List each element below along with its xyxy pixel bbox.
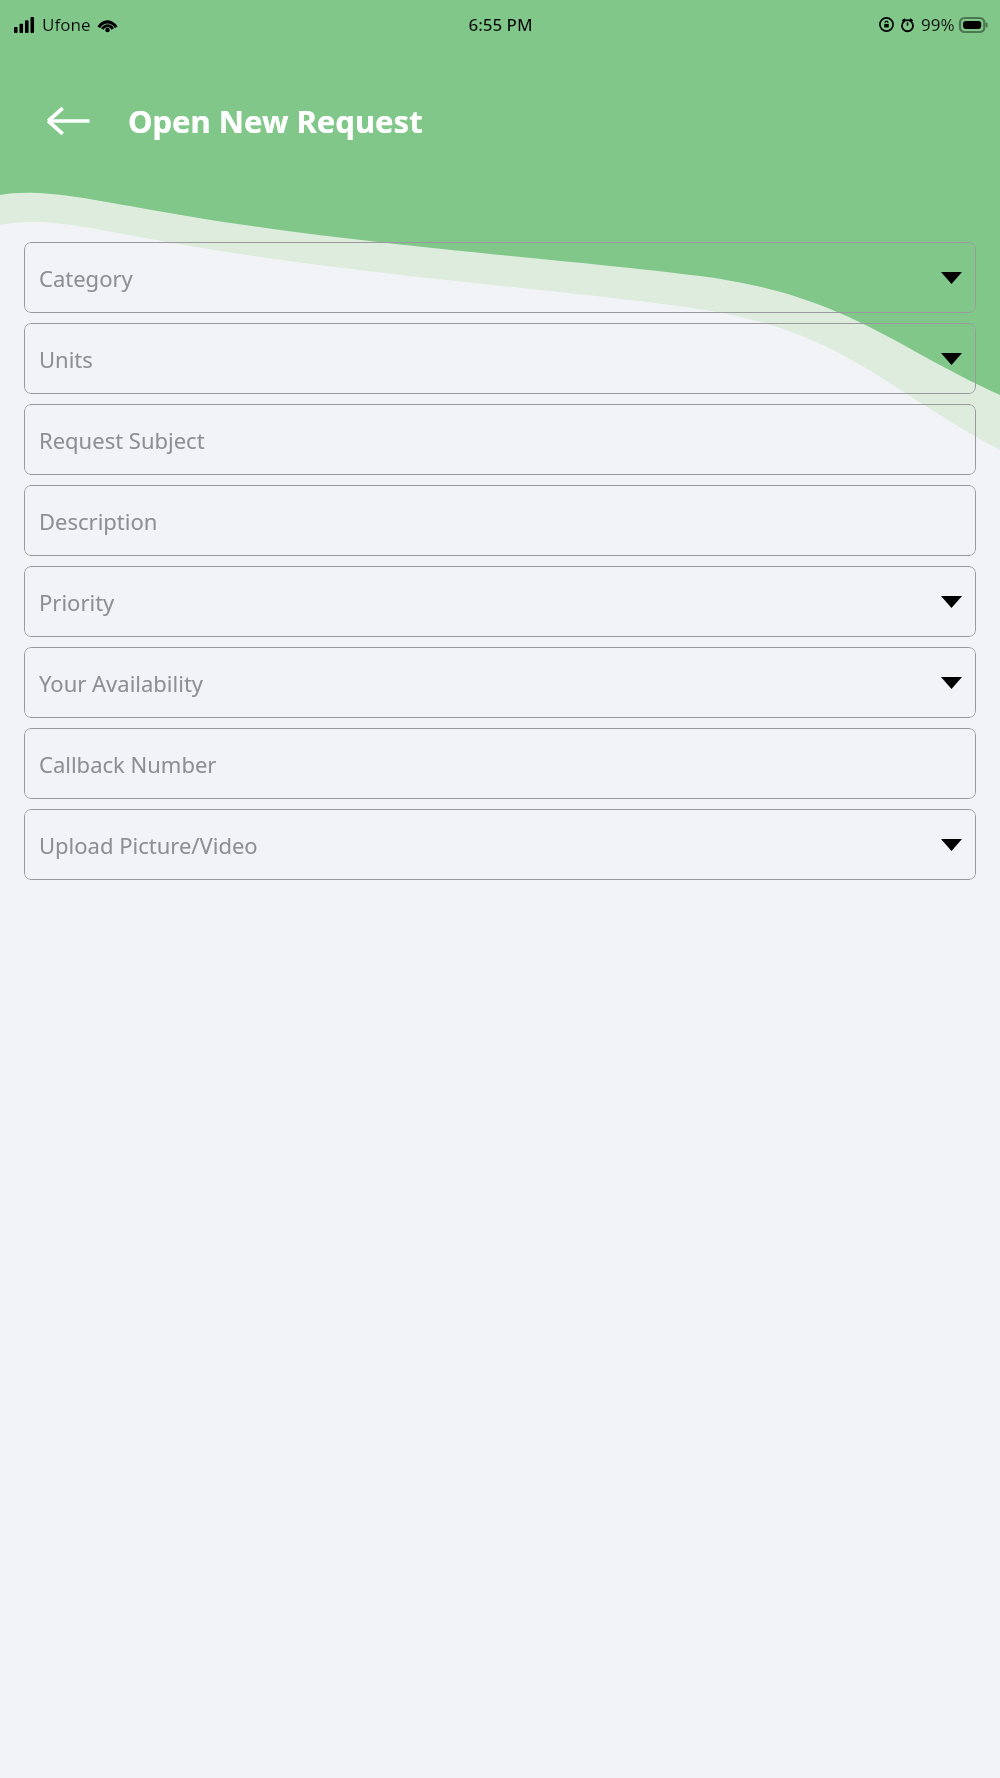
button[interactable]: Category <box>24 242 976 313</box>
staticText: 6:55 PM <box>468 13 533 36</box>
button[interactable]: Back <box>40 93 96 149</box>
button[interactable]: Priority <box>24 566 976 637</box>
staticText: Upload Picture/Video <box>39 830 258 860</box>
button[interactable]: Your Availability <box>24 647 976 718</box>
staticText: Category <box>39 263 133 293</box>
staticText: Your Availability <box>39 668 204 698</box>
button[interactable]: Units <box>24 323 976 394</box>
button[interactable]: Description <box>24 485 976 556</box>
staticText: Units <box>39 344 93 374</box>
button[interactable]: Callback Number <box>24 728 976 799</box>
staticText: Ufone <box>42 13 91 36</box>
staticText: Priority <box>39 587 115 617</box>
staticText: Open New Request <box>128 100 423 142</box>
button[interactable]: Request Subject <box>24 404 976 475</box>
staticText: Callback Number <box>39 749 217 779</box>
button[interactable]: Upload Picture/Video <box>24 809 976 880</box>
staticText: Description <box>39 506 158 536</box>
staticText: 99% <box>921 13 955 36</box>
staticText: Request Subject <box>39 425 205 455</box>
